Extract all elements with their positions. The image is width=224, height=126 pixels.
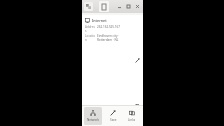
button[interactable]: Edit Internet — [132, 15, 143, 105]
button[interactable]: Device frame — [99, 1, 109, 12]
staticText: Save — [110, 118, 117, 122]
button[interactable]: Save — [104, 107, 122, 125]
staticText: Eindhoven city · Rotterdam · NL — [97, 34, 132, 42]
button[interactable]: Close — [134, 3, 141, 10]
staticText: Location — [85, 34, 96, 42]
button[interactable]: Internet — [82, 15, 143, 105]
button[interactable]: App menu — [84, 2, 93, 11]
button[interactable]: Network — [84, 107, 102, 125]
staticText: Network — [87, 118, 100, 122]
button[interactable]: Minimize — [116, 3, 123, 10]
button[interactable]: Maximize — [125, 3, 132, 10]
staticText: 262.162.525.167 — [97, 25, 132, 29]
staticText: Internet — [92, 18, 107, 23]
staticText: Address — [85, 25, 96, 33]
staticText: Links — [128, 118, 136, 122]
button[interactable]: Links — [123, 107, 141, 125]
